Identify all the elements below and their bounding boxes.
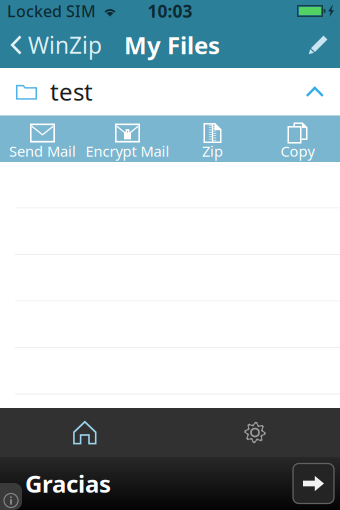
button[interactable]: Copy [255, 116, 340, 162]
button[interactable]: Settings [170, 408, 340, 457]
staticText: Gracias [25, 468, 111, 499]
button[interactable]: Send Mail [0, 116, 85, 162]
button[interactable]: Home [0, 408, 170, 457]
staticText: test [50, 76, 93, 107]
staticText: WinZip [28, 30, 102, 60]
staticText: Encrypt Mail [85, 141, 169, 161]
button[interactable]: Encrypt Mail [85, 116, 170, 162]
staticText: Zip [202, 141, 223, 161]
staticText: My Files [124, 29, 220, 61]
button[interactable]: test [0, 68, 340, 115]
staticText: Copy [280, 141, 314, 161]
button[interactable]: Ad info [0, 491, 22, 510]
button[interactable]: WinZip [0, 22, 112, 68]
button[interactable]: Open ad [293, 463, 334, 503]
staticText: Locked SIM [7, 0, 96, 22]
button[interactable]: Edit [296, 22, 340, 68]
button[interactable]: Zip [170, 116, 255, 162]
staticText: 10:03 [147, 0, 192, 22]
staticText: Send Mail [9, 141, 76, 161]
button[interactable]: Gracias [0, 457, 340, 510]
